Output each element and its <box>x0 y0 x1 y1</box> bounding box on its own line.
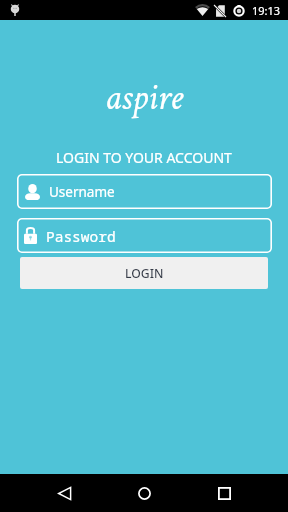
staticText: Password <box>46 226 116 246</box>
staticText: 19:13 <box>252 3 281 18</box>
other: Debug <box>9 4 21 16</box>
button[interactable]: Password <box>17 218 272 253</box>
button[interactable]: LOGIN <box>20 257 268 289</box>
button[interactable]: Back <box>34 474 94 512</box>
staticText: Username <box>49 183 115 201</box>
staticText: LOGIN <box>125 265 164 282</box>
button[interactable]: Recents <box>194 474 254 512</box>
staticText: aspire <box>105 74 183 122</box>
button[interactable]: Home <box>114 474 174 512</box>
staticText: LOGIN TO YOUR ACCOUNT <box>56 148 232 167</box>
button[interactable]: Username <box>17 174 272 209</box>
